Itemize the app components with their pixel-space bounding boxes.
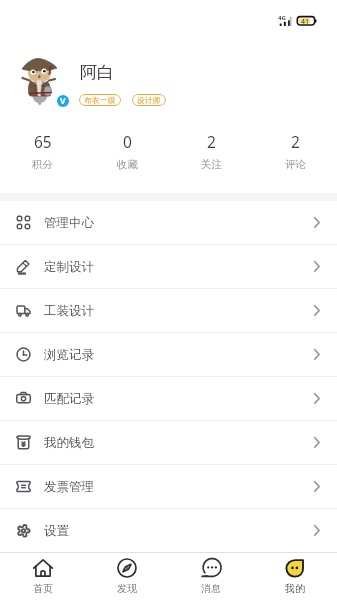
button[interactable]: 工装设计 xyxy=(0,289,337,333)
button[interactable]: 匹配记录 xyxy=(0,377,337,421)
staticText: 首页 xyxy=(33,582,53,595)
staticText: 41 xyxy=(301,17,310,27)
staticText: 我的 xyxy=(285,582,305,595)
button[interactable]: 设置 xyxy=(0,509,337,553)
staticText: 我的钱包 xyxy=(44,435,94,451)
staticText: 发现 xyxy=(117,582,137,595)
staticText: 工装设计 xyxy=(44,303,94,319)
staticText: 管理中心 xyxy=(44,215,94,231)
staticText: 阿白 xyxy=(80,62,114,83)
staticText: 布衣一级 xyxy=(84,95,116,105)
button[interactable]: 65 xyxy=(0,131,85,171)
button[interactable]: 浏览记录 xyxy=(0,333,337,377)
staticText: 评论 xyxy=(285,158,306,171)
staticText: 消息 xyxy=(201,582,221,595)
staticText: 4G xyxy=(278,14,286,22)
button[interactable]: 我的 xyxy=(253,553,337,595)
staticText: 定制设计 xyxy=(44,259,94,275)
staticText: 积分 xyxy=(32,158,53,171)
button[interactable]: 我的钱包 xyxy=(0,421,337,465)
button[interactable]: 0 xyxy=(85,131,169,171)
staticText: 发票管理 xyxy=(44,479,94,495)
staticText: 设计师 xyxy=(137,95,161,105)
staticText: V xyxy=(60,95,66,107)
button[interactable]: 发票管理 xyxy=(0,465,337,509)
staticText: 0 xyxy=(123,131,132,152)
staticText: 2 xyxy=(207,131,216,152)
button[interactable]: 定制设计 xyxy=(0,245,337,289)
button[interactable]: 管理中心 xyxy=(0,201,337,245)
button[interactable]: 2 xyxy=(169,131,253,171)
button[interactable]: 首页 xyxy=(0,553,85,595)
staticText: 设置 xyxy=(44,523,69,539)
button[interactable]: 发现 xyxy=(85,553,169,595)
staticText: 收藏 xyxy=(117,158,138,171)
staticText: 65 xyxy=(34,131,52,152)
staticText: 2 xyxy=(291,131,300,152)
button[interactable]: 消息 xyxy=(169,553,253,595)
staticText: 匹配记录 xyxy=(44,391,94,407)
staticText: 浏览记录 xyxy=(44,347,94,363)
button[interactable]: 2 xyxy=(253,131,337,171)
staticText: 关注 xyxy=(201,158,222,171)
